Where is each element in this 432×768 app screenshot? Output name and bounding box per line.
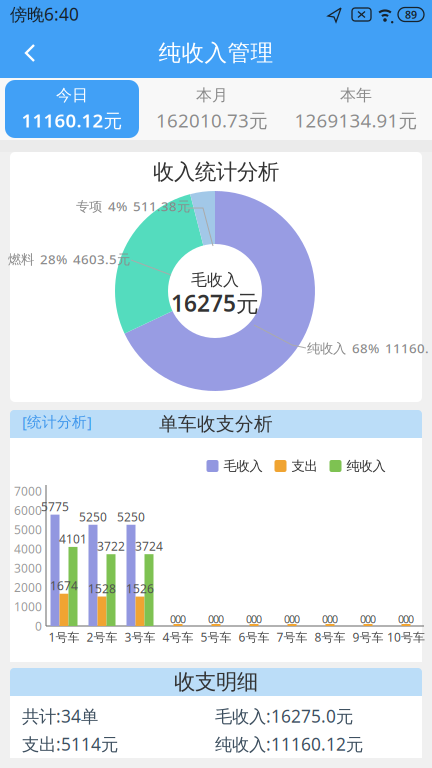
staticText: 支出 <box>291 458 317 474</box>
staticText: 收支明细 <box>174 669 258 695</box>
staticText: 0 <box>213 612 219 626</box>
staticText: 支出:5114元 <box>22 732 118 755</box>
staticText: 0 <box>322 612 328 626</box>
staticText: 89 <box>405 7 417 22</box>
staticText: 9号车 <box>352 629 383 645</box>
staticText: 燃料 28% 4603.5元 <box>8 250 130 268</box>
staticText: 纯收入管理 <box>158 39 273 67</box>
staticText: 本月 <box>196 85 228 105</box>
staticText: 0 <box>251 612 257 626</box>
staticText: 0 <box>370 612 376 626</box>
staticText: 0 <box>289 612 295 626</box>
staticText: 7号车 <box>276 629 307 645</box>
staticText: 0 <box>208 612 214 626</box>
staticText: 162010.73元 <box>156 108 268 133</box>
staticText: 专项 4% 511.38元 <box>76 197 190 215</box>
staticText: 3722 <box>97 538 125 554</box>
staticText: 纯收入 <box>346 458 385 474</box>
staticText: 0 <box>170 612 176 626</box>
staticText: 单车收支分析 <box>159 412 273 435</box>
staticText: 3724 <box>135 538 163 554</box>
staticText: 5250 <box>117 509 145 525</box>
button[interactable]: 本月 <box>142 80 282 138</box>
staticText: 1674 <box>50 578 78 594</box>
staticText: 6号车 <box>238 629 269 645</box>
staticText: 2000 <box>14 579 42 595</box>
staticText: 10号车 <box>387 629 425 645</box>
staticText: 4000 <box>14 541 42 557</box>
staticText: 0 <box>360 612 366 626</box>
staticText: 4101 <box>59 531 87 547</box>
staticText: 今日 <box>56 85 88 105</box>
staticText: 傍晚6:40 <box>10 2 79 25</box>
staticText: [统计分析] <box>22 412 92 431</box>
staticText: 8号车 <box>314 629 345 645</box>
staticText: 0 <box>180 612 186 626</box>
staticText: 纯收入:11160.12元 <box>215 732 363 755</box>
staticText: 收入统计分析 <box>153 159 279 185</box>
staticText: 0 <box>332 612 338 626</box>
staticText: 6000 <box>14 502 42 518</box>
staticText: 共计:34单 <box>22 704 98 727</box>
staticText: 0 <box>408 612 414 626</box>
staticText: 5250 <box>79 509 107 525</box>
staticText: 0 <box>403 612 409 626</box>
staticText: 1269134.91元 <box>294 108 417 133</box>
staticText: 本年 <box>340 85 372 105</box>
staticText: 7000 <box>14 483 42 499</box>
staticText: 毛收入:16275.0元 <box>215 704 353 727</box>
staticText: 1号车 <box>48 629 79 645</box>
staticText: 纯收入 68% 11160. <box>307 339 429 357</box>
staticText: 0 <box>327 612 333 626</box>
button[interactable]: [统计分析] <box>22 416 132 432</box>
staticText: 毛收入 <box>191 270 239 290</box>
staticText: 4号车 <box>162 629 193 645</box>
staticText: 3号车 <box>124 629 155 645</box>
button[interactable]: 今日 <box>5 80 139 138</box>
staticText: 0 <box>246 612 252 626</box>
staticText: 1526 <box>126 581 154 596</box>
staticText: 3000 <box>14 560 42 576</box>
staticText: 毛收入 <box>223 458 262 474</box>
staticText: 0 <box>294 612 300 626</box>
staticText: 11160.12元 <box>21 108 122 133</box>
staticText: 5775 <box>41 499 69 515</box>
staticText: 16275元 <box>171 288 259 318</box>
staticText: 0 <box>398 612 404 626</box>
staticText: 0 <box>256 612 262 626</box>
staticText: 0 <box>365 612 371 626</box>
staticText: 5号车 <box>200 629 231 645</box>
staticText: 1528 <box>88 581 116 596</box>
staticText: 2号车 <box>86 629 117 645</box>
staticText: 1000 <box>14 599 42 615</box>
button[interactable] <box>8 32 52 76</box>
staticText: 0 <box>218 612 224 626</box>
staticText: 0 <box>35 618 42 634</box>
staticText: 0 <box>175 612 181 626</box>
staticText: 5000 <box>14 522 42 537</box>
staticText: 0 <box>284 612 290 626</box>
button[interactable]: 本年 <box>286 80 426 138</box>
